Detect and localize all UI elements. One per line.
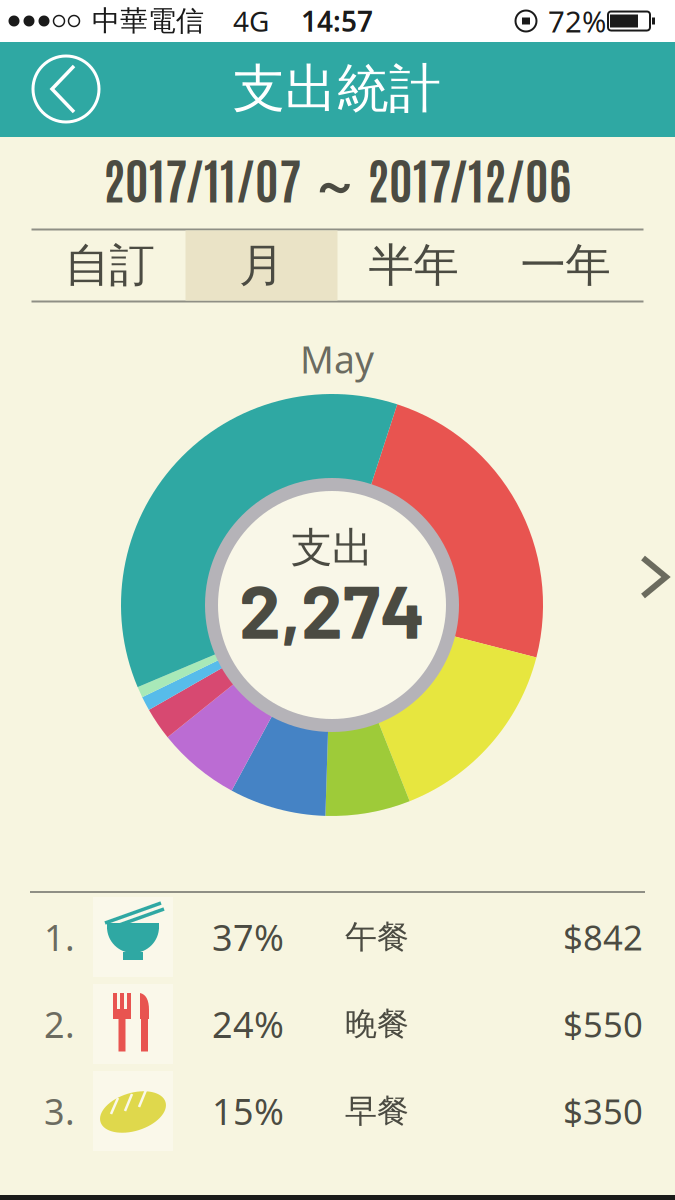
staticText: 2017/11/07 ～ 2017/12/06 xyxy=(103,147,571,217)
staticText: 14:57 xyxy=(301,2,373,40)
button[interactable]: 半年 xyxy=(337,230,489,300)
staticText: 3. xyxy=(44,1087,75,1135)
staticText: 2. xyxy=(44,1000,75,1048)
button[interactable]: 一年 xyxy=(489,230,641,300)
staticText: 午餐 xyxy=(345,917,409,957)
staticText: 中華電信 xyxy=(92,4,204,38)
staticText: 1. xyxy=(44,913,75,961)
staticText: 月 xyxy=(239,238,284,293)
staticText: 支出統計 xyxy=(233,57,441,121)
button[interactable]: 1. xyxy=(0,894,675,980)
staticText: $350 xyxy=(563,1088,643,1134)
button[interactable]: 自訂 xyxy=(33,230,185,300)
staticText: 24% xyxy=(212,1000,284,1048)
staticText: 15% xyxy=(212,1087,284,1135)
staticText: 半年 xyxy=(368,238,458,293)
button[interactable]: 3. xyxy=(0,1068,675,1154)
staticText: 自訂 xyxy=(64,238,154,293)
staticText: 一年 xyxy=(520,238,610,293)
button[interactable]: Next xyxy=(637,554,673,600)
button[interactable]: Back xyxy=(33,56,99,122)
staticText: 早餐 xyxy=(345,1091,409,1131)
button[interactable]: 月 xyxy=(185,230,337,300)
staticText: 72% xyxy=(548,1,606,40)
staticText: 4G xyxy=(233,2,269,40)
staticText: 支出 xyxy=(291,523,373,573)
staticText: 2,274 xyxy=(239,564,425,654)
staticText: $550 xyxy=(563,1001,643,1047)
staticText: 37% xyxy=(212,913,284,961)
staticText: $842 xyxy=(563,914,643,960)
button[interactable]: 2. xyxy=(0,981,675,1067)
staticText: 晚餐 xyxy=(345,1004,409,1044)
staticText: May xyxy=(300,334,374,384)
